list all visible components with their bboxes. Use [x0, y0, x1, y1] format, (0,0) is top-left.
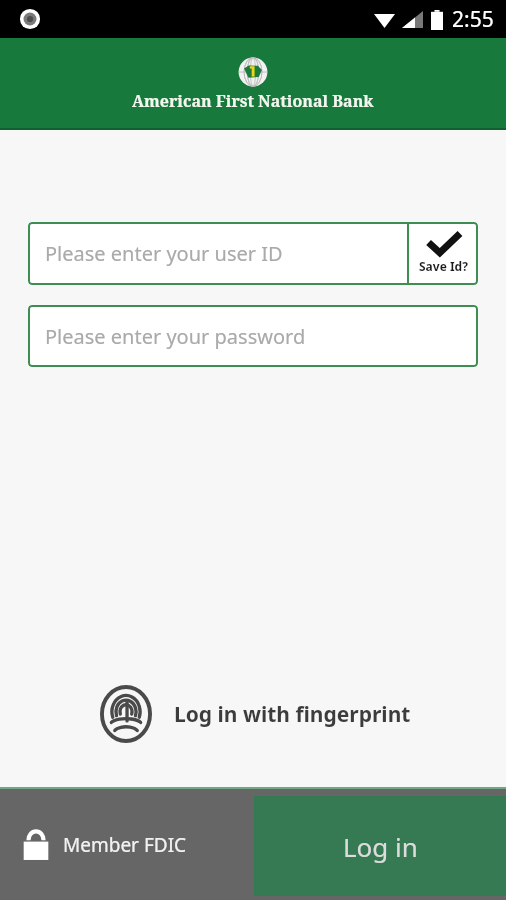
- staticText: Log in with fingerprint: [174, 700, 411, 729]
- staticText: American First National Bank: [132, 90, 374, 112]
- staticText: Please enter your user ID: [45, 240, 283, 267]
- button[interactable]: Log in with fingerprint: [96, 681, 415, 747]
- other: Member FDIC secure: [22, 828, 50, 862]
- staticText: 2:55: [452, 5, 494, 34]
- button[interactable]: Member FDIC secure: [22, 828, 187, 862]
- staticText: Save Id?: [419, 258, 468, 274]
- staticText: Please enter your password: [45, 323, 306, 350]
- button[interactable]: Log in: [254, 796, 506, 896]
- staticText: Member FDIC: [63, 832, 187, 858]
- button[interactable]: Save Id?: [409, 222, 478, 285]
- other: Log in with fingerprint: [100, 685, 152, 743]
- button[interactable]: Please enter your password: [28, 305, 478, 367]
- staticText: Log in: [343, 829, 418, 864]
- button[interactable]: Please enter your user ID: [28, 222, 407, 285]
